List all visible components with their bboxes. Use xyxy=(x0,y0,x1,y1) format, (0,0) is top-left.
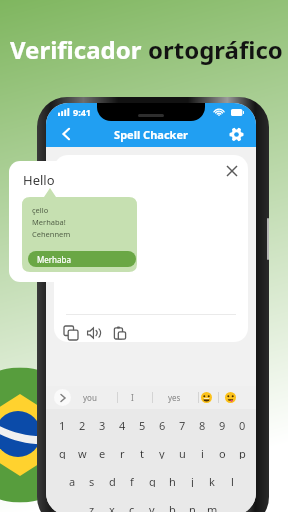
button[interactable]: f xyxy=(122,474,142,487)
button[interactable]: you xyxy=(75,386,105,409)
button[interactable]: Settings xyxy=(226,124,246,144)
staticText: g xyxy=(149,474,156,487)
staticText: Merhaba! xyxy=(32,217,66,227)
button[interactable]: 5 xyxy=(132,418,152,431)
staticText: e xyxy=(99,446,106,459)
staticText: I xyxy=(131,392,134,403)
button[interactable]: b xyxy=(162,502,182,512)
staticText: yes xyxy=(168,392,181,403)
button[interactable]: Back xyxy=(56,124,76,144)
staticText: n xyxy=(189,502,196,512)
staticText: 4 xyxy=(119,418,126,431)
staticText: 6 xyxy=(159,418,166,431)
button[interactable]: c xyxy=(122,502,142,512)
button[interactable]: o xyxy=(212,446,232,459)
staticText: 9:41 xyxy=(73,106,91,118)
staticText: o xyxy=(219,446,226,459)
button[interactable]: l xyxy=(222,474,242,487)
staticText: 2 xyxy=(79,418,86,431)
staticText: 0 xyxy=(239,418,246,431)
button[interactable]: 8 xyxy=(192,418,212,431)
staticText: b xyxy=(169,502,176,512)
button[interactable]: 4 xyxy=(112,418,132,431)
staticText: 3 xyxy=(99,418,106,431)
staticText: 8 xyxy=(199,418,206,431)
staticText: m xyxy=(207,502,218,512)
button[interactable]: p xyxy=(232,446,252,459)
staticText: j xyxy=(191,474,194,487)
button[interactable]: u xyxy=(172,446,192,459)
staticText: y xyxy=(159,446,165,459)
staticText: Spell Chacker xyxy=(76,127,226,142)
button[interactable]: r xyxy=(112,446,132,459)
staticText: Cehennem xyxy=(32,229,71,239)
button[interactable]: 0 xyxy=(232,418,252,431)
staticText: d xyxy=(109,474,116,487)
button[interactable]: q xyxy=(52,446,72,459)
button[interactable]: 7 xyxy=(172,418,192,431)
staticText: you xyxy=(83,392,97,403)
staticText: t xyxy=(140,446,144,459)
staticText: k xyxy=(209,474,215,487)
button[interactable]: Close xyxy=(222,161,242,181)
button[interactable]: Sticker xyxy=(225,392,236,403)
button[interactable]: s xyxy=(82,474,102,487)
button[interactable]: 1 xyxy=(52,418,72,431)
staticText: x xyxy=(109,502,115,512)
staticText: Verificador xyxy=(10,33,148,66)
button[interactable]: yes xyxy=(159,386,189,409)
button[interactable]: Emoji xyxy=(201,392,212,403)
staticText: çello xyxy=(32,205,49,215)
staticText: 9 xyxy=(219,418,226,431)
button[interactable]: v xyxy=(142,502,162,512)
button[interactable]: Listen xyxy=(85,324,103,342)
staticText: c xyxy=(129,502,135,512)
button[interactable]: k xyxy=(202,474,222,487)
staticText: 5 xyxy=(139,418,146,431)
button[interactable]: a xyxy=(62,474,82,487)
staticText: p xyxy=(239,446,246,459)
staticText: w xyxy=(78,446,87,459)
button[interactable]: Copy xyxy=(62,324,80,342)
staticText: 1 xyxy=(59,418,66,431)
staticText: ortográfico xyxy=(148,33,283,66)
button[interactable]: m xyxy=(202,502,222,512)
button[interactable]: 9 xyxy=(212,418,232,431)
staticText: s xyxy=(89,474,95,487)
button[interactable]: Paste xyxy=(111,324,129,342)
staticText: h xyxy=(169,474,176,487)
button[interactable]: Merhaba xyxy=(28,251,136,267)
staticText: l xyxy=(231,474,234,487)
staticText: u xyxy=(179,446,186,459)
button[interactable]: 6 xyxy=(152,418,172,431)
button[interactable]: w xyxy=(72,446,92,459)
button[interactable]: z xyxy=(82,502,102,512)
button[interactable]: j xyxy=(182,474,202,487)
staticText: f xyxy=(130,474,134,487)
button[interactable]: t xyxy=(132,446,152,459)
button[interactable]: i xyxy=(192,446,212,459)
button[interactable]: d xyxy=(102,474,122,487)
button[interactable]: e xyxy=(92,446,112,459)
staticText: i xyxy=(201,446,204,459)
staticText: 7 xyxy=(179,418,186,431)
staticText: v xyxy=(149,502,155,512)
button[interactable]: n xyxy=(182,502,202,512)
button[interactable]: I xyxy=(117,386,147,409)
button[interactable]: 3 xyxy=(92,418,112,431)
staticText: Merhaba xyxy=(37,254,71,265)
staticText: Hello xyxy=(23,171,55,189)
staticText: a xyxy=(69,474,76,487)
button[interactable]: y xyxy=(152,446,172,459)
staticText: r xyxy=(120,446,125,459)
staticText: q xyxy=(59,446,66,459)
button[interactable]: More suggestions xyxy=(54,389,71,406)
button[interactable]: g xyxy=(142,474,162,487)
button[interactable]: x xyxy=(102,502,122,512)
button[interactable]: h xyxy=(162,474,182,487)
staticText: z xyxy=(89,502,95,512)
button[interactable]: 2 xyxy=(72,418,92,431)
